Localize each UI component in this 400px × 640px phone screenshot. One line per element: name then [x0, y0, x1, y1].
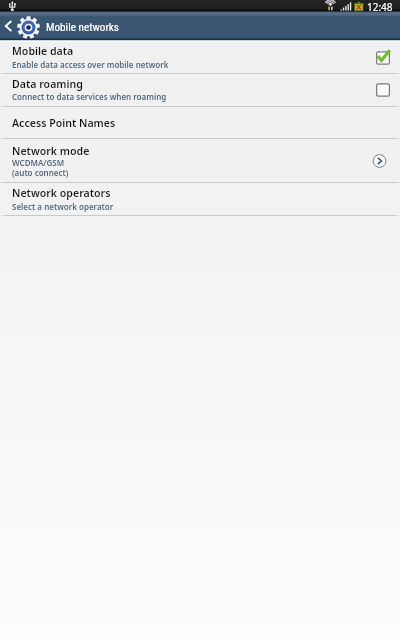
staticText: Access Point Names [12, 116, 116, 130]
button[interactable]: Network mode options [372, 150, 394, 172]
button[interactable]: Checked [372, 47, 394, 69]
button[interactable]: Navigate up [0, 16, 400, 39]
button[interactable]: Mobile data [0, 42, 400, 73]
staticText: Enable data access over mobile network [12, 59, 169, 70]
staticText: Data roaming [12, 77, 83, 91]
staticText: Select a network operator [12, 201, 114, 212]
button[interactable]: Access Point Names [0, 107, 400, 138]
staticText: Mobile networks [46, 21, 119, 34]
button[interactable]: Network operators [0, 183, 400, 215]
staticText: Network operators [12, 186, 111, 200]
staticText: WCDMA/GSM [12, 157, 65, 168]
staticText: (auto connect) [12, 167, 69, 178]
staticText: Mobile data [12, 44, 74, 58]
staticText: 12:48 [367, 0, 393, 11]
button[interactable]: Data roaming [0, 74, 400, 106]
button[interactable]: Network mode [0, 139, 400, 182]
button[interactable]: Unchecked [372, 79, 394, 101]
staticText: Connect to data services when roaming [12, 91, 167, 102]
staticText: Network mode [12, 144, 90, 158]
